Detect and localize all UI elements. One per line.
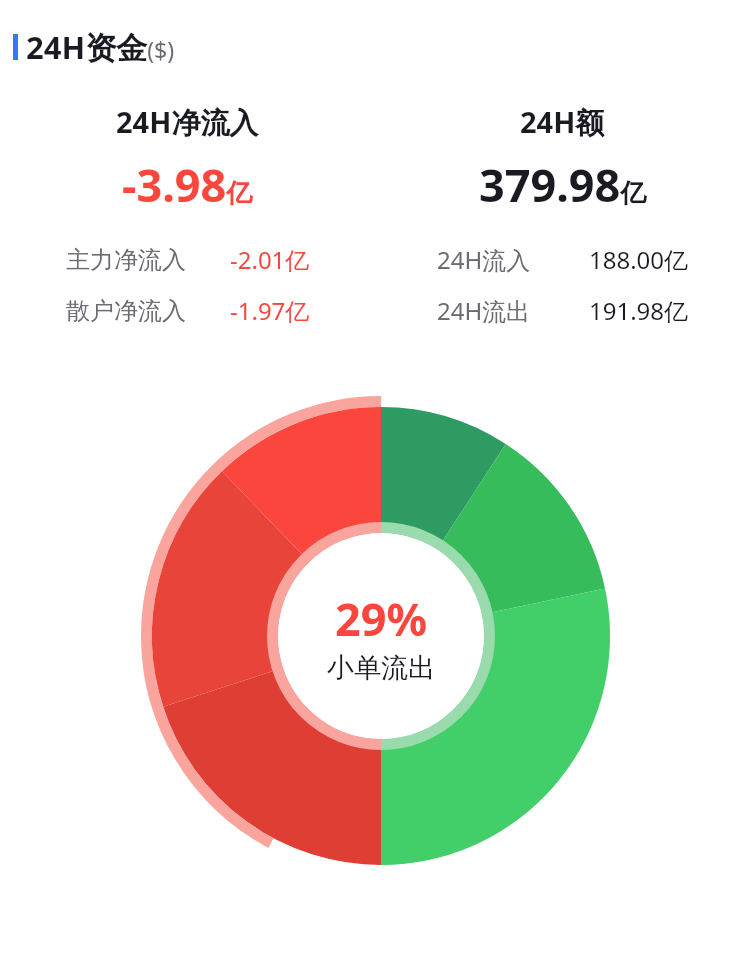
staticText: 24H资金($) [26, 26, 175, 68]
button[interactable]: 24H资金($) [13, 26, 750, 68]
staticText: 散户净流入 [66, 296, 186, 326]
staticText: 主力净流入 [66, 245, 186, 275]
staticText: 188.00亿 [589, 243, 689, 276]
staticText: 24H流入 [437, 243, 531, 276]
staticText: 24H额 [520, 102, 605, 142]
staticText: -1.97亿 [230, 294, 310, 327]
staticText: 191.98亿 [589, 294, 689, 327]
button[interactable]: 24H净流入 [0, 102, 375, 327]
staticText: 29% [335, 588, 428, 649]
staticText: 379.98亿 [479, 154, 647, 215]
button[interactable]: 24H额 [375, 102, 750, 327]
staticText: 24H流出 [437, 294, 531, 327]
staticText: -3.98亿 [122, 154, 253, 215]
staticText: -2.01亿 [230, 243, 310, 276]
staticText: 小单流出 [327, 651, 435, 685]
button[interactable]: 资金流向占比环形图 [0, 403, 750, 883]
staticText: 24H净流入 [116, 102, 259, 142]
